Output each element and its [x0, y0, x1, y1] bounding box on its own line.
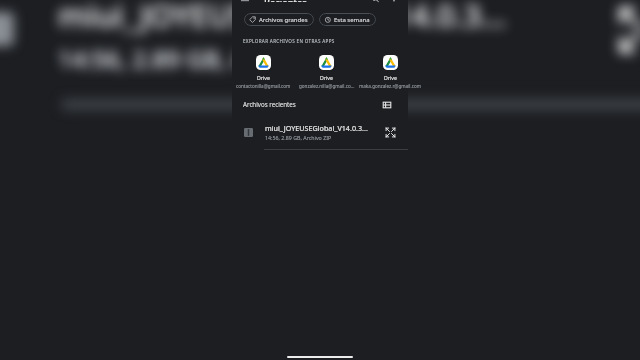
staticText: 14:56, 2.89 GB, Archivo ZIP	[58, 42, 362, 75]
button[interactable]: Vista de cuadrícula	[382, 100, 392, 110]
button[interactable]: Más opciones	[390, 0, 398, 2]
staticText: Archivos recientes	[243, 100, 296, 108]
staticText: 14:56, 2.89 GB, Archivo ZIP	[265, 134, 332, 141]
staticText: miui_JOYEUSEGlobal_V14.0.3...	[265, 123, 368, 133]
button[interactable]: Menú	[241, 0, 249, 2]
staticText: Archivos grandes	[259, 16, 308, 24]
staticText: Drive	[384, 74, 397, 81]
staticText: Drive	[320, 74, 333, 81]
staticText: EXPLORAR ARCHIVOS EN OTRAS APPS	[243, 38, 335, 44]
button[interactable]: Archivos grandes	[244, 13, 314, 26]
staticText: Esta semana	[334, 16, 370, 24]
button[interactable]: Esta semana	[319, 13, 376, 26]
staticText: Drive	[257, 74, 270, 81]
staticText: maka.gonzalez.r@gmail.com	[359, 83, 422, 89]
button[interactable]: Buscar	[371, 0, 379, 2]
button[interactable]: Expandir	[385, 127, 396, 138]
staticText: contactonilla@gmail.com	[236, 83, 291, 89]
staticText: Recientes	[264, 0, 307, 2]
button[interactable]: Drive	[232, 55, 295, 89]
button[interactable]: Drive	[359, 55, 422, 89]
staticText: miui_JOYEUSEGlobal_V14.0.3...	[58, 0, 507, 36]
button[interactable]: Drive	[295, 55, 358, 89]
staticText: gonzalez.nilla@gmail.co...	[299, 83, 355, 89]
button[interactable]: miui_JOYEUSEGlobal_V14.0.3...	[232, 117, 408, 150]
